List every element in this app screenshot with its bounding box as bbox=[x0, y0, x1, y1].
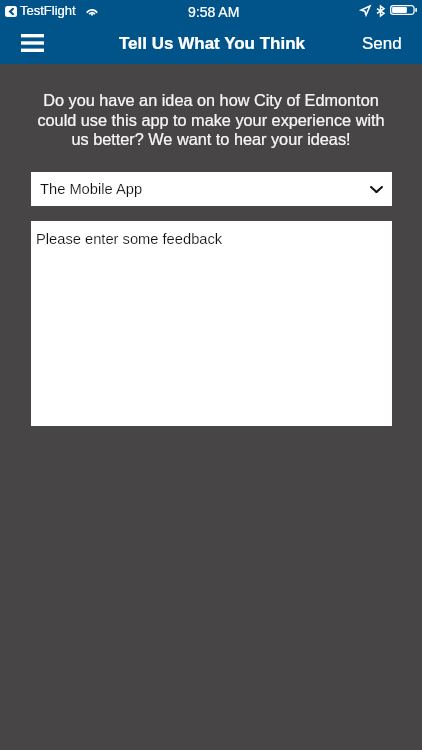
other: Expand picker bbox=[370, 186, 383, 193]
staticText: The Mobile App bbox=[40, 181, 143, 197]
staticText: 9:58 AM bbox=[188, 4, 240, 20]
button[interactable]: Please enter some feedback bbox=[31, 221, 392, 426]
staticText: Tell Us What You Think bbox=[119, 34, 306, 53]
button[interactable]: Menu bbox=[9, 27, 55, 59]
button[interactable]: Send bbox=[362, 34, 402, 53]
staticText: TestFlight bbox=[20, 3, 76, 18]
button[interactable]: Back to TestFlight bbox=[5, 6, 17, 17]
button[interactable]: The Mobile App bbox=[31, 172, 392, 206]
staticText: Please enter some feedback bbox=[36, 231, 223, 247]
staticText: Do you have an idea on how City of Edmon… bbox=[30, 91, 392, 148]
staticText: Send bbox=[362, 34, 402, 53]
